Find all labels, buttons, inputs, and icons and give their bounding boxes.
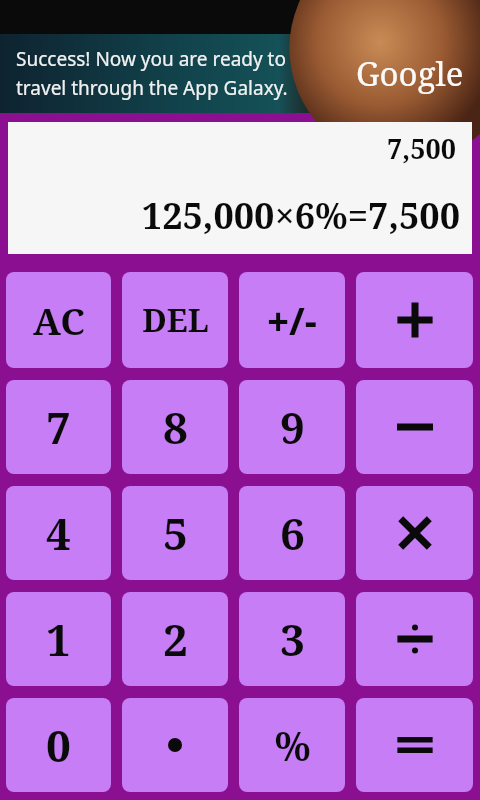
button[interactable]: % [239, 698, 345, 792]
staticText: DEL [142, 298, 209, 342]
button[interactable]: AC [6, 272, 111, 368]
button[interactable]: 5 [122, 486, 228, 580]
button[interactable]: 7 [6, 380, 111, 474]
staticText: 4 [46, 503, 71, 563]
staticText: AC [33, 295, 85, 345]
button[interactable]: + [356, 272, 473, 368]
button[interactable]: 6 [239, 486, 345, 580]
staticText: % [274, 718, 311, 772]
button[interactable]: × [356, 486, 473, 580]
button[interactable]: Success! Now you are ready to [0, 34, 480, 113]
button[interactable]: ÷ [356, 592, 473, 686]
button[interactable]: · [122, 698, 228, 792]
staticText: +/- [267, 294, 317, 346]
button[interactable]: = [356, 698, 473, 792]
staticText: 3G [371, 10, 386, 25]
button[interactable]: 9 [239, 380, 345, 474]
staticText: 7,500 [387, 130, 456, 167]
staticText: 8 [163, 397, 188, 457]
staticText: 125,000×6%=7,500 [141, 191, 460, 240]
button[interactable]: − [356, 380, 473, 474]
button[interactable]: DEL [122, 272, 228, 368]
button[interactable]: 0 [6, 698, 111, 792]
button[interactable]: +/- [239, 272, 345, 368]
staticText: 2 [163, 609, 188, 669]
button[interactable]: 4 [6, 486, 111, 580]
button[interactable]: 2 [122, 592, 228, 686]
staticText: travel through the App Galaxy. [16, 75, 288, 101]
staticText: 2:45 [430, 3, 472, 32]
button[interactable]: 1 [6, 592, 111, 686]
staticText: 7 [46, 397, 71, 457]
button[interactable]: 8 [122, 380, 228, 474]
staticText: 0 [46, 715, 71, 775]
staticText: 1 [46, 609, 71, 669]
staticText: 3 [280, 609, 305, 669]
staticText: Success! Now you are ready to [16, 46, 286, 72]
staticText: 5 [163, 503, 188, 563]
button[interactable]: 7,500 [8, 122, 472, 254]
staticText: 9 [280, 397, 305, 457]
staticText: Google [356, 51, 464, 96]
staticText: 6 [280, 503, 305, 563]
button[interactable]: 3 [239, 592, 345, 686]
